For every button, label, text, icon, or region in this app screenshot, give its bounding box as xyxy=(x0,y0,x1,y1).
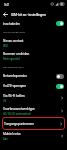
button[interactable]: Toggle xyxy=(56,84,64,89)
button[interactable]: Voorkeursnetwerktype xyxy=(0,104,67,117)
staticText: Nummer omleiden xyxy=(3,52,30,56)
staticText: Aan xyxy=(3,137,8,140)
staticText: Nieuw contact xyxy=(3,39,24,43)
staticText: Inschakelen xyxy=(3,22,20,26)
staticText: Via Wi-Fi bellen xyxy=(3,94,25,98)
staticText: SIM-kit en -instellingen xyxy=(11,13,46,17)
button[interactable]: Back xyxy=(0,9,11,20)
button[interactable]: Netwerkoperator xyxy=(0,71,67,81)
staticText: Netwerkoperator xyxy=(3,74,27,78)
staticText: Toegangspuntnamen xyxy=(4,122,59,126)
button[interactable]: Nummer omleiden xyxy=(0,49,67,62)
staticText: 4G/3G/2G automatisch xyxy=(3,112,31,115)
button[interactable]: Toggle xyxy=(56,21,64,26)
staticText: VoLTE-oproepen xyxy=(3,84,27,88)
button[interactable]: Toggle xyxy=(56,74,64,79)
button[interactable]: Mobiel netw. xyxy=(0,129,67,142)
staticText: SIM xyxy=(3,44,8,47)
staticText: Mobiel netw. xyxy=(3,132,21,136)
button[interactable]: Toegangspuntnamen xyxy=(2,117,65,130)
staticText: Voorkeursnetwerktype xyxy=(3,107,35,111)
button[interactable]: Nieuw contact xyxy=(0,36,67,49)
staticText: NETWERKINSTELL. xyxy=(3,66,25,69)
button[interactable]: VoLTE-oproepen xyxy=(0,81,67,91)
staticText: Niet ingesteld xyxy=(3,57,20,60)
button[interactable]: Via Wi-Fi bellen xyxy=(0,91,67,104)
staticText: Uit xyxy=(3,99,7,102)
staticText: SIM-KAARTBEHEER xyxy=(3,31,25,34)
staticText: 9:41 xyxy=(4,3,10,6)
button[interactable]: Inschakelen xyxy=(0,19,67,28)
